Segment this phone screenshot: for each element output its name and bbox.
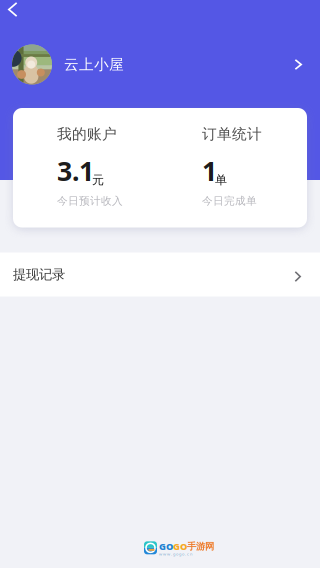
staticText: 今日预计收入 xyxy=(57,194,123,207)
staticText: 提现记录 xyxy=(13,266,65,283)
button[interactable]: 云上小屋 xyxy=(0,44,320,85)
button[interactable]: Back xyxy=(0,0,26,26)
staticText: 1 xyxy=(202,153,217,188)
staticText: 今日完成单 xyxy=(202,194,257,207)
staticText: 云上小屋 xyxy=(64,55,124,73)
staticText: 元 xyxy=(92,173,104,187)
staticText: 手游网 xyxy=(187,541,214,552)
staticText: GO xyxy=(173,540,187,552)
staticText: 我的账户 xyxy=(57,125,117,143)
staticText: 3.1 xyxy=(57,153,94,188)
staticText: GO xyxy=(159,540,173,552)
staticText: 订单统计 xyxy=(202,125,262,143)
staticText: w w w . g o g o . c n xyxy=(159,551,192,557)
staticText: 单 xyxy=(215,173,227,187)
button[interactable]: 提现记录 xyxy=(0,252,320,296)
